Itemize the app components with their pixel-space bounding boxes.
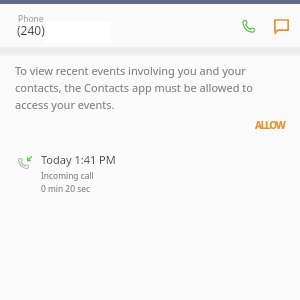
staticText: Incoming call (41, 170, 94, 181)
staticText: 0 min 20 sec (41, 183, 90, 194)
button[interactable]: ALLOW (247, 113, 293, 137)
button[interactable]: Call (233, 11, 263, 41)
staticText: Today 1:41 PM (41, 152, 116, 167)
staticText: ALLOW (255, 118, 285, 132)
staticText: Phone (18, 13, 44, 25)
button[interactable]: Message (266, 11, 296, 41)
button[interactable]: Today 1:41 PM (0, 140, 300, 196)
staticText: (240) (17, 22, 45, 38)
staticText: To view recent events involving you and … (15, 63, 255, 112)
